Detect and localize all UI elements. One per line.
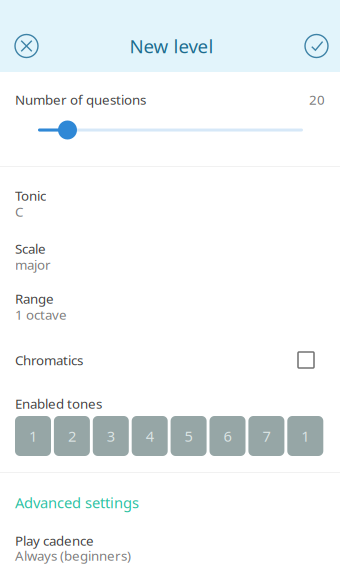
staticText: Scale [15,240,46,257]
staticText: 4 [146,426,154,446]
button[interactable]: 1 [15,416,51,456]
button[interactable]: 6 [209,416,245,456]
staticText: 2 [68,426,76,446]
button[interactable]: Tonic [0,189,340,242]
button[interactable]: 7 [248,416,284,456]
button[interactable]: Chromatics [0,342,340,397]
staticText: 7 [262,426,270,446]
staticText: Always (beginners) [15,547,131,564]
button[interactable]: Done [299,28,334,63]
staticText: 1 [29,426,37,446]
button[interactable]: 1 [287,416,323,456]
button[interactable]: 2 [54,416,90,456]
staticText: 1 octave [15,306,67,323]
staticText: New level [129,34,213,58]
button[interactable]: 4 [132,416,168,456]
staticText: Tonic [15,187,46,204]
staticText: 3 [107,426,115,446]
staticText: Chromatics [15,351,83,369]
staticText: 5 [185,426,193,446]
staticText: major [15,256,51,273]
button[interactable]: Range [0,292,340,342]
button[interactable]: Scale [0,242,340,292]
staticText: Number of questions [15,91,146,108]
staticText: Play cadence [15,532,94,549]
staticText: 6 [223,426,231,446]
button[interactable]: 5 [171,416,207,456]
button[interactable]: 3 [93,416,129,456]
staticText: 1 [301,426,309,446]
staticText: Enabled tones [15,395,102,412]
staticText: C [15,203,23,220]
staticText: Range [15,290,54,307]
staticText: 20 [309,91,325,108]
button[interactable]: Advanced settings [15,473,325,510]
button[interactable]: Play cadence [15,510,325,562]
staticText: Advanced settings [15,493,139,512]
button[interactable]: Close [9,28,44,63]
